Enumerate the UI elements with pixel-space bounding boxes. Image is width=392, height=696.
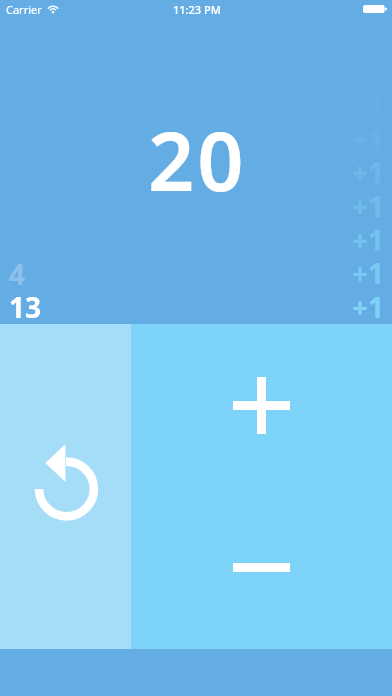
staticText: 4 — [9, 255, 26, 293]
button[interactable]: Decrement — [131, 486, 392, 649]
button[interactable]: Increment — [131, 324, 392, 486]
staticText: +1 — [352, 221, 385, 259]
staticText: Carrier — [6, 2, 42, 17]
staticText: +1 — [352, 254, 385, 292]
staticText: +1 — [352, 288, 385, 326]
staticText: +1 — [352, 153, 385, 191]
staticText: +1 — [352, 187, 385, 225]
button[interactable]: Counter — [0, 0, 392, 324]
staticText: 20 — [148, 104, 247, 214]
button[interactable]: Undo — [0, 324, 131, 649]
staticText: 11:23 PM — [173, 2, 221, 17]
staticText: 13 — [9, 288, 42, 326]
